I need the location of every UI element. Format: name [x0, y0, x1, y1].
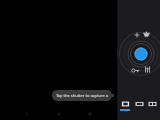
button[interactable]: Shutter: [131, 46, 147, 62]
button[interactable]: Recents: [86, 110, 94, 118]
button[interactable]: Camera viewfinder: [0, 0, 117, 120]
button[interactable]: Back: [23, 110, 31, 118]
button[interactable]: Tap the shutter to capture a photo: [52, 90, 112, 101]
button[interactable]: Video: [133, 100, 145, 111]
button[interactable]: Zoom in: [133, 31, 141, 39]
button[interactable]: Exposure: [143, 65, 152, 74]
button[interactable]: Flash: [142, 30, 151, 39]
staticText: Tap the shutter to capture a photo: [52, 93, 112, 98]
button[interactable]: Camera settings: [131, 66, 140, 75]
button[interactable]: Home: [55, 110, 63, 118]
button[interactable]: Photo: [119, 100, 131, 111]
button[interactable]: Panorama: [146, 100, 158, 111]
